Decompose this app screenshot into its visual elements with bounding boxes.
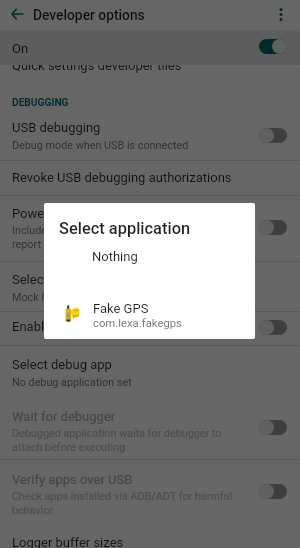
staticText: Enable view attribute inspection <box>12 319 196 334</box>
staticText: Check apps installed via ADB/ADT for har… <box>12 490 233 517</box>
staticText: Logger buffer sizes <box>12 535 124 548</box>
button[interactable]: Enable view attribute inspection <box>0 313 300 345</box>
button[interactable]: Quick settings developer tiles <box>0 52 300 82</box>
button[interactable]: Switch on <box>253 33 293 61</box>
staticText: Nothing <box>92 249 138 264</box>
staticText: Select application <box>59 219 191 238</box>
staticText: Select mock location app <box>12 272 158 287</box>
staticText: Wait for debugger <box>12 409 116 424</box>
staticText: Developer options <box>33 7 145 23</box>
button[interactable]: Wait for debugger <box>0 400 300 459</box>
button[interactable]: Revoke USB debugging authorizations <box>0 162 300 195</box>
staticText: Select debug app <box>12 357 112 372</box>
button[interactable]: Select mock location app <box>0 262 300 311</box>
button[interactable]: Switch off <box>253 214 293 242</box>
staticText: Mock location app: none <box>12 291 130 304</box>
staticText: Verify apps over USB <box>12 472 133 487</box>
button[interactable]: Navigate up <box>1 0 33 30</box>
button[interactable]: Switch off <box>253 122 293 150</box>
staticText: Quick settings developer tiles <box>12 58 182 73</box>
staticText: Fake GPS <box>93 301 149 316</box>
staticText: Debug mode when USB is connected <box>12 139 189 152</box>
staticText: Power menu bug reports <box>12 206 155 221</box>
staticText: USB debugging <box>12 120 101 135</box>
button[interactable]: Switch off <box>253 414 293 442</box>
button[interactable]: USB debugging <box>0 115 300 160</box>
button[interactable]: Verify apps over USB <box>0 461 300 521</box>
staticText: Debugged application waits for debugger … <box>12 427 222 454</box>
button[interactable]: Switch off <box>253 478 293 506</box>
button[interactable]: On <box>0 30 300 65</box>
staticText: DEBUGGING <box>12 97 69 109</box>
button[interactable]: Switch off <box>253 314 293 342</box>
staticText: Revoke USB debugging authorizations <box>12 170 232 185</box>
button[interactable]: Select debug app <box>0 348 300 396</box>
button[interactable]: Nothing <box>44 244 255 276</box>
button[interactable]: More options <box>266 0 296 30</box>
staticText: com.lexa.fakegps <box>93 317 182 330</box>
staticText: On <box>12 41 29 56</box>
button[interactable]: Fake GPS <box>44 297 255 337</box>
staticText: Include option in power menu for taking … <box>12 224 232 251</box>
button[interactable]: Power menu bug reports <box>0 197 300 261</box>
button[interactable]: Logger buffer sizes <box>0 526 300 548</box>
staticText: No debug application set <box>12 376 132 389</box>
